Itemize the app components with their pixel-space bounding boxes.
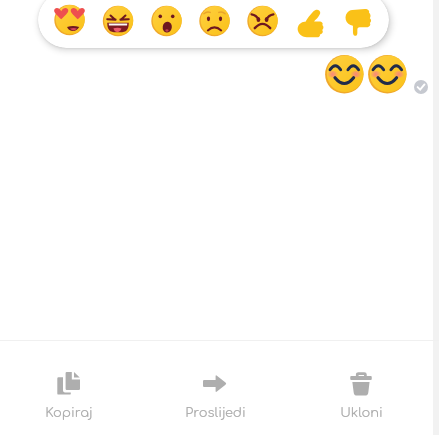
button[interactable]: Angry	[242, 0, 282, 42]
button[interactable]: Wow	[146, 0, 186, 42]
button[interactable]: Reaction picker	[38, 0, 389, 48]
button[interactable]: Love	[50, 0, 90, 42]
button[interactable]: Dislike	[338, 0, 378, 42]
button[interactable]: Laugh	[98, 0, 138, 42]
button[interactable]: Like	[290, 0, 330, 42]
staticText: Kopiraj	[45, 406, 93, 420]
staticText: Ukloni	[340, 406, 383, 420]
button[interactable]: Sad	[194, 0, 234, 42]
staticText: Proslijedi	[185, 406, 246, 420]
